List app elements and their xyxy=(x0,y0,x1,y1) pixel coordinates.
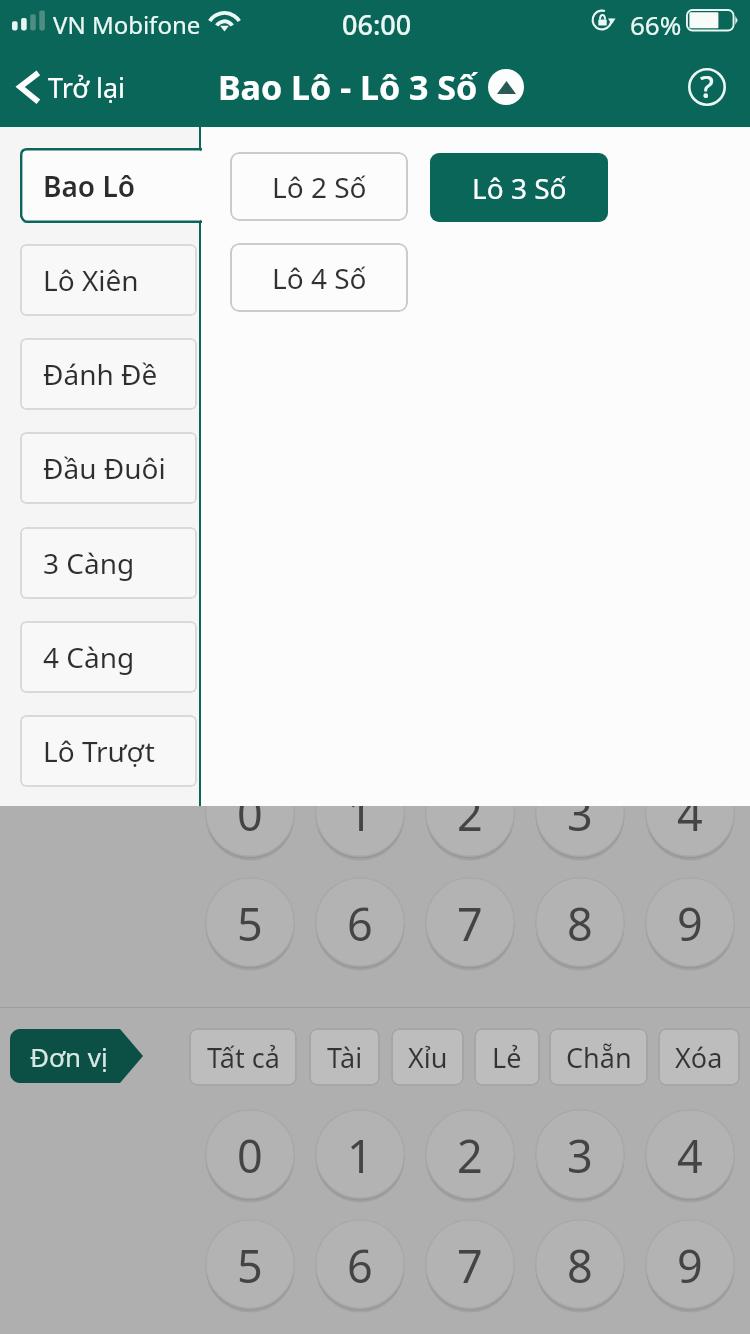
staticText: 3 Càng xyxy=(43,544,135,582)
staticText: 5 xyxy=(237,1235,263,1296)
button[interactable]: 3 xyxy=(535,1109,625,1199)
button[interactable]: 8 xyxy=(535,1219,625,1309)
button[interactable]: Đầu Đuôi xyxy=(20,432,197,504)
button[interactable]: Help xyxy=(683,63,731,111)
staticText: Xóa xyxy=(675,1039,723,1076)
button[interactable]: 7 xyxy=(425,877,515,967)
staticText: 6 xyxy=(347,1235,373,1296)
staticText: ? xyxy=(700,65,714,107)
staticText: 9 xyxy=(677,893,703,954)
staticText: Lô Xiên xyxy=(43,261,139,299)
button[interactable]: 4 xyxy=(645,1109,735,1199)
button[interactable]: Lô Xiên xyxy=(20,244,197,316)
button[interactable]: 9 xyxy=(645,877,735,967)
staticText: 7 xyxy=(457,1235,483,1296)
button[interactable]: Lô 4 Số xyxy=(230,243,408,312)
staticText: Xỉu xyxy=(408,1039,448,1076)
staticText: Bao Lô xyxy=(43,167,135,205)
button[interactable]: 1 xyxy=(315,806,405,857)
staticText: Chẵn xyxy=(566,1039,632,1076)
staticText: VN Mobifone xyxy=(53,8,201,41)
button[interactable]: Lô 2 Số xyxy=(230,152,408,221)
button[interactable]: 4 Càng xyxy=(20,621,197,693)
button[interactable]: 5 xyxy=(205,1219,295,1309)
staticText: Bao Lô - Lô 3 Số xyxy=(218,64,478,110)
staticText: Lô 2 Số xyxy=(272,168,367,206)
staticText: 2 xyxy=(457,806,483,844)
staticText: 6 xyxy=(347,893,373,954)
staticText: 66% xyxy=(630,7,682,42)
button[interactable]: 6 xyxy=(315,877,405,967)
staticText: Lô 3 Số xyxy=(472,169,567,207)
staticText: Lô 4 Số xyxy=(272,259,367,297)
button[interactable]: 0 xyxy=(205,1109,295,1199)
staticText: Đơn vị xyxy=(30,1039,108,1074)
button[interactable]: Lẻ xyxy=(474,1028,540,1086)
staticText: Tất cả xyxy=(207,1039,280,1076)
staticText: 4 xyxy=(677,1125,703,1186)
button[interactable]: Trở lại xyxy=(16,69,134,106)
staticText: Đánh Đề xyxy=(43,355,158,393)
staticText: 1 xyxy=(347,1125,373,1186)
staticText: 3 xyxy=(567,1125,593,1186)
button[interactable]: Lô 3 Số xyxy=(430,153,608,222)
button[interactable]: Bao Lô xyxy=(20,148,202,223)
button[interactable]: 7 xyxy=(425,1219,515,1309)
button[interactable]: Tất cả xyxy=(189,1028,297,1086)
staticText: 1 xyxy=(347,806,373,844)
staticText: 2 xyxy=(457,1125,483,1186)
staticText: 8 xyxy=(567,893,593,954)
staticText: 9 xyxy=(677,1235,703,1296)
button[interactable]: 3 Càng xyxy=(20,527,197,599)
button[interactable]: 5 xyxy=(205,877,295,967)
staticText: Trở lại xyxy=(48,69,126,106)
button[interactable]: Đơn vị xyxy=(10,1029,143,1083)
button[interactable]: 2 xyxy=(425,1109,515,1199)
staticText: 3 xyxy=(567,806,593,844)
button[interactable]: 9 xyxy=(645,1219,735,1309)
button[interactable]: 8 xyxy=(535,877,625,967)
staticText: 5 xyxy=(237,893,263,954)
button[interactable]: 4 xyxy=(645,806,735,857)
staticText: 4 xyxy=(677,806,703,844)
button[interactable]: Chẵn xyxy=(549,1028,648,1086)
staticText: Lẻ xyxy=(492,1039,522,1076)
staticText: 0 xyxy=(237,806,263,844)
button[interactable]: Xỉu xyxy=(391,1028,464,1086)
staticText: Tài xyxy=(327,1039,363,1076)
staticText: Lô Trượt xyxy=(43,732,155,770)
staticText: 4 Càng xyxy=(43,638,135,676)
button[interactable]: 2 xyxy=(425,806,515,857)
button[interactable]: 1 xyxy=(315,1109,405,1199)
button[interactable]: 3 xyxy=(535,806,625,857)
button[interactable]: 6 xyxy=(315,1219,405,1309)
button[interactable]: Lô Trượt xyxy=(20,715,197,787)
staticText: Đầu Đuôi xyxy=(43,449,166,487)
staticText: 8 xyxy=(567,1235,593,1296)
button[interactable]: 0 xyxy=(205,806,295,857)
staticText: 0 xyxy=(237,1125,263,1186)
button[interactable]: Bao Lô - Lô 3 Số xyxy=(218,64,524,110)
staticText: 06:00 xyxy=(342,6,412,43)
button[interactable]: Đánh Đề xyxy=(20,338,197,410)
staticText: 7 xyxy=(457,893,483,954)
button[interactable]: Xóa xyxy=(658,1028,740,1086)
button[interactable]: Tài xyxy=(309,1028,380,1086)
